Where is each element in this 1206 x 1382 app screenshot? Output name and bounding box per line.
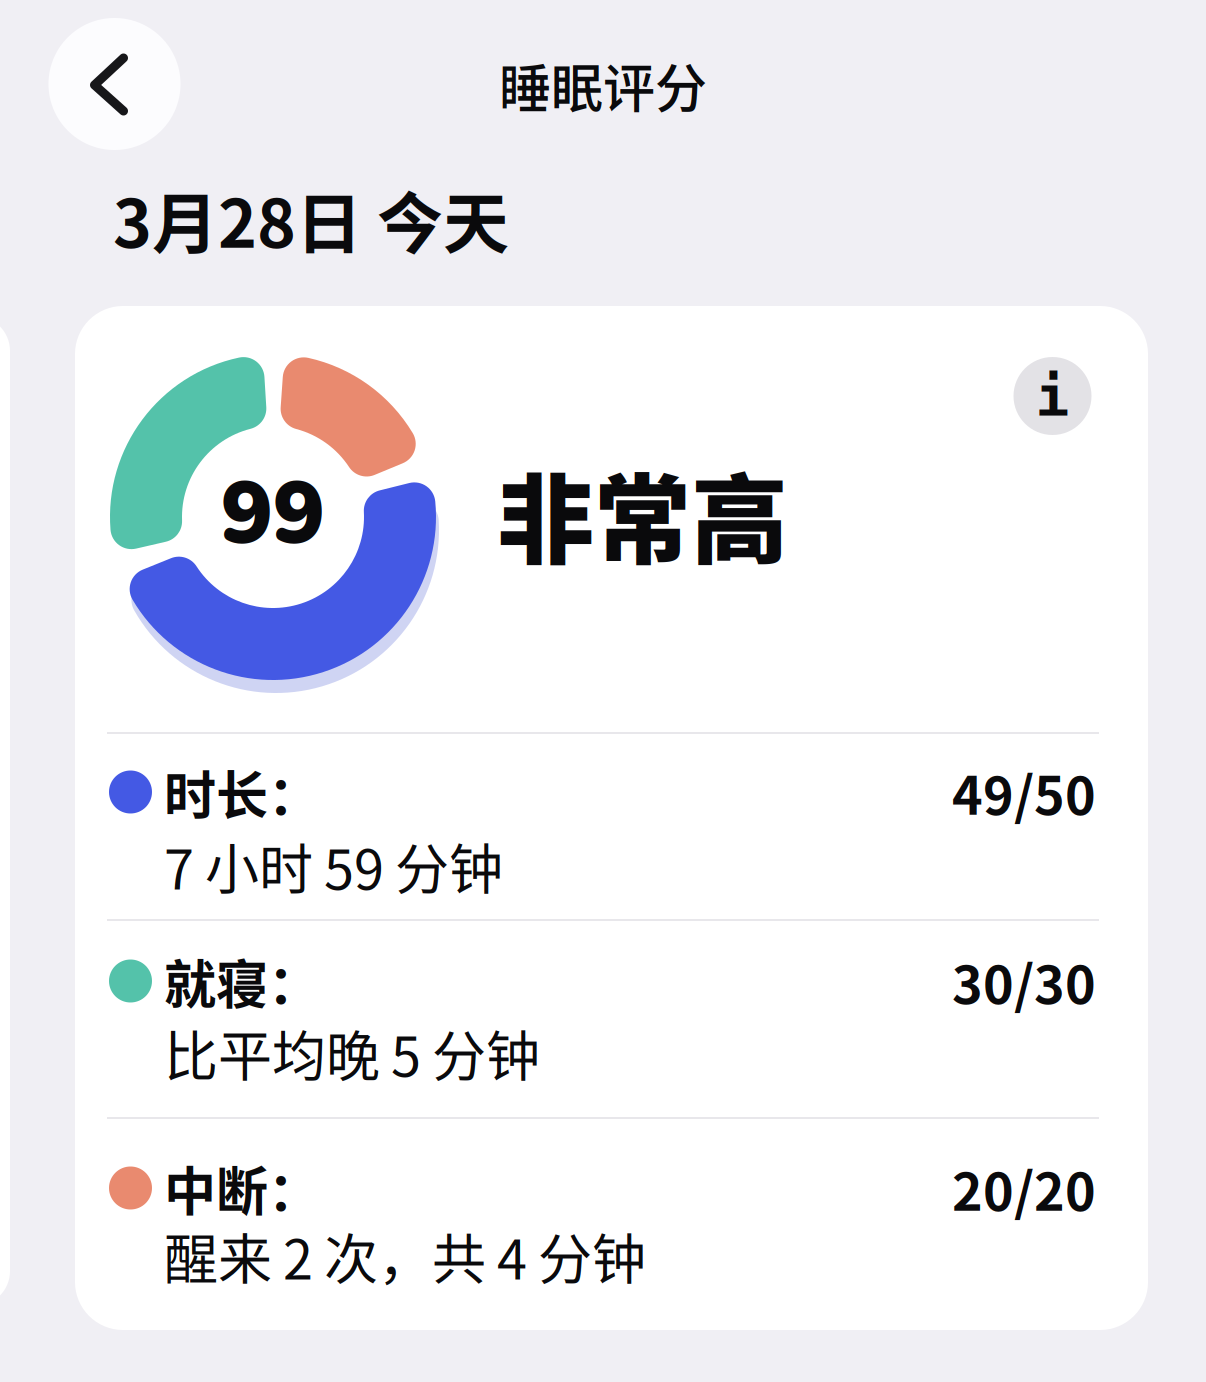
staticText: 非常高 bbox=[497, 446, 788, 580]
staticText: 睡眠评分 bbox=[499, 49, 707, 121]
staticText: 7 小时 59 分钟 bbox=[164, 829, 503, 903]
staticText: 中断： bbox=[164, 1152, 320, 1224]
staticText: 就寝： bbox=[164, 945, 320, 1017]
staticText: i bbox=[1035, 363, 1069, 429]
staticText: 时长： bbox=[164, 756, 320, 828]
staticText: 30/30 bbox=[952, 945, 1096, 1017]
button[interactable]: 睡眠评分详情 bbox=[75, 306, 1148, 1330]
staticText: 醒来 2 次，共 4 分钟 bbox=[164, 1219, 646, 1293]
button[interactable]: 返回 bbox=[48, 18, 180, 150]
staticText: 比平均晚 5 分钟 bbox=[164, 1016, 540, 1090]
button[interactable]: 信息 bbox=[1013, 357, 1091, 435]
staticText: 3月28日 今天 bbox=[113, 174, 509, 264]
staticText: 99 bbox=[221, 455, 325, 573]
staticText: 20/20 bbox=[952, 1152, 1096, 1224]
staticText: 49/50 bbox=[952, 756, 1096, 828]
